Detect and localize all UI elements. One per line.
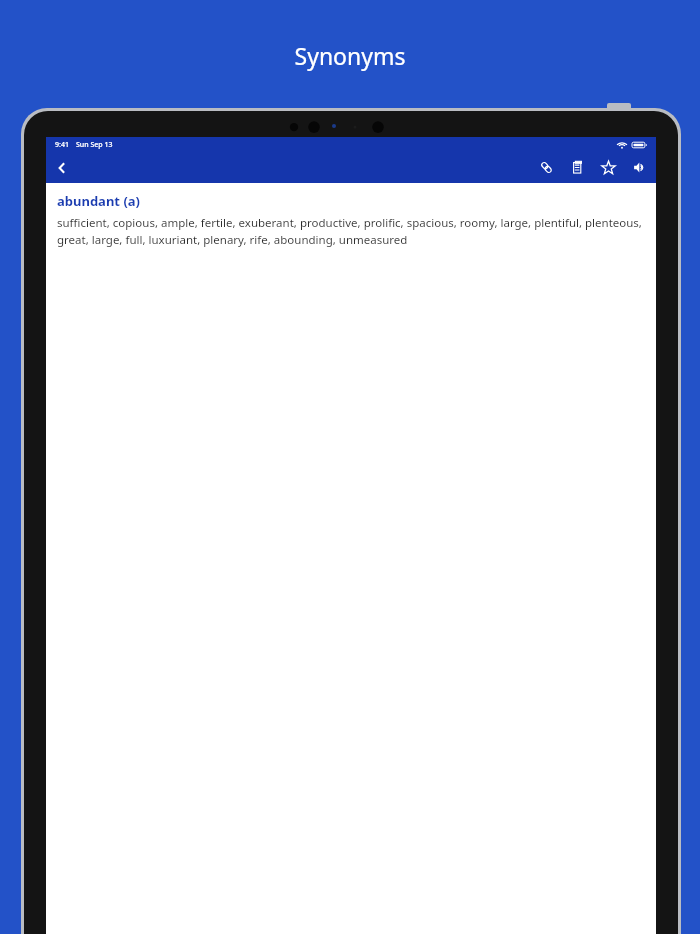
staticText: Synonyms <box>0 40 700 71</box>
button[interactable]: Definition <box>566 156 589 179</box>
staticText: Sun Sep 13 <box>76 140 113 150</box>
button[interactable]: Link <box>535 156 558 179</box>
staticText: sufficient, copious, ample, fertile, exu… <box>57 215 645 248</box>
button[interactable]: abundant (a) <box>57 192 140 210</box>
staticText: 9:41 <box>55 140 69 150</box>
button[interactable]: Speak <box>628 156 651 179</box>
button[interactable]: Back <box>49 155 75 181</box>
button[interactable]: Favorite <box>597 156 620 179</box>
